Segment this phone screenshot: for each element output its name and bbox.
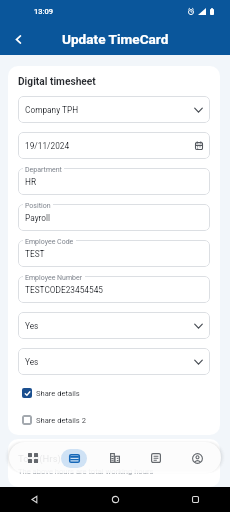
staticText: Department	[25, 166, 62, 174]
button[interactable]: TESTCODE23454545	[18, 276, 210, 303]
button[interactable]: Yes	[18, 348, 210, 375]
button[interactable]: HR	[18, 168, 210, 195]
staticText: Total(Hrs)	[18, 453, 61, 464]
staticText: HR	[25, 177, 37, 187]
button[interactable]: Company TPH	[18, 96, 210, 123]
button[interactable]: Payroll	[18, 204, 210, 231]
button[interactable]: Back	[6, 27, 30, 51]
staticText: Share details 2	[36, 416, 86, 425]
staticText: Payroll	[25, 213, 51, 223]
button[interactable]: Share details 2	[18, 413, 210, 427]
staticText: Share details	[36, 389, 80, 398]
button[interactable]: Reports	[139, 445, 173, 471]
staticText: Digital timesheet	[18, 76, 96, 88]
staticText: TEST	[25, 249, 45, 259]
staticText: TESTCODE23454545	[25, 285, 104, 295]
staticText: Company TPH	[25, 105, 79, 115]
staticText: Employee Number	[25, 274, 83, 282]
button[interactable]: 19/11/2024	[18, 132, 210, 159]
button[interactable]: Timecard	[57, 445, 91, 471]
staticText: Yes	[25, 357, 39, 367]
button[interactable]: Yes	[18, 312, 210, 339]
button[interactable]: Share details	[18, 386, 210, 400]
button[interactable]: Profile	[180, 445, 214, 471]
staticText: The above hours are total working hours	[18, 467, 154, 476]
button[interactable]: Company	[98, 445, 132, 471]
button[interactable]: TEST	[18, 240, 210, 267]
staticText: Update TimeCard	[62, 31, 169, 47]
staticText: Yes	[25, 321, 39, 331]
staticText: 13:09	[34, 7, 54, 16]
button[interactable]: Dashboard	[16, 445, 50, 471]
staticText: 19/11/2024	[25, 141, 70, 151]
staticText: Employee Code	[25, 238, 74, 246]
staticText: Position	[25, 202, 51, 210]
